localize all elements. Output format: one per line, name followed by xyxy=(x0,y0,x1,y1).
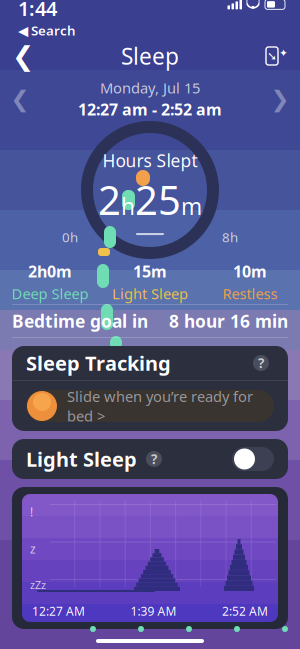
staticText: ✦ xyxy=(279,47,288,59)
staticText: zZz xyxy=(30,578,46,592)
button[interactable]: Slide when you’re ready for bed > xyxy=(12,381,288,431)
staticText: 10m xyxy=(233,261,267,282)
staticText: ❮ xyxy=(10,86,29,112)
staticText: Bedtime goal in xyxy=(12,309,148,332)
staticText: ! xyxy=(30,504,33,520)
staticText: 2 xyxy=(98,173,121,226)
staticText: h xyxy=(121,191,135,221)
staticText: 1:44 xyxy=(18,0,57,21)
staticText: Monday, Jul 15 xyxy=(100,78,200,98)
staticText: Slide when you’re ready for bed > xyxy=(67,386,253,425)
staticText: ❮ xyxy=(12,41,34,71)
staticText: 2:52 AM xyxy=(222,603,268,619)
button[interactable]: Light Sleep xyxy=(12,439,288,479)
staticText: 12:27 am - 2:52 am xyxy=(78,99,222,120)
staticText: Sleep Tracking xyxy=(26,350,171,376)
button[interactable]: Help about sleep tracking xyxy=(248,350,274,376)
staticText: Sleep xyxy=(121,41,179,71)
button[interactable]: Previous day xyxy=(0,77,40,121)
staticText: Hours Slept xyxy=(102,149,197,172)
staticText: Deep Sleep xyxy=(11,284,88,303)
staticText: 1:39 AM xyxy=(130,603,176,619)
staticText: ? xyxy=(151,450,157,468)
staticText: ? xyxy=(258,354,264,372)
staticText: 15m xyxy=(133,261,167,282)
staticText: ❯ xyxy=(270,86,289,112)
staticText: 8 hour 16 min xyxy=(169,309,288,332)
staticText: ➘ xyxy=(267,49,277,63)
staticText: ◀ Search xyxy=(18,21,76,39)
button[interactable]: Back xyxy=(0,34,46,78)
staticText: 25 xyxy=(135,173,181,226)
staticText: 2h0m xyxy=(28,261,72,282)
staticText: Restless xyxy=(222,284,277,303)
staticText: z xyxy=(30,541,36,557)
button[interactable]: Next day xyxy=(260,77,300,121)
staticText: m xyxy=(181,191,202,221)
staticText: Light Sleep xyxy=(112,284,188,303)
button[interactable]: Device xyxy=(254,34,300,78)
staticText: 8h xyxy=(222,228,238,246)
staticText: 12:27 AM xyxy=(32,603,85,619)
staticText: Light Sleep xyxy=(26,446,137,472)
staticText: 0h xyxy=(62,228,78,246)
